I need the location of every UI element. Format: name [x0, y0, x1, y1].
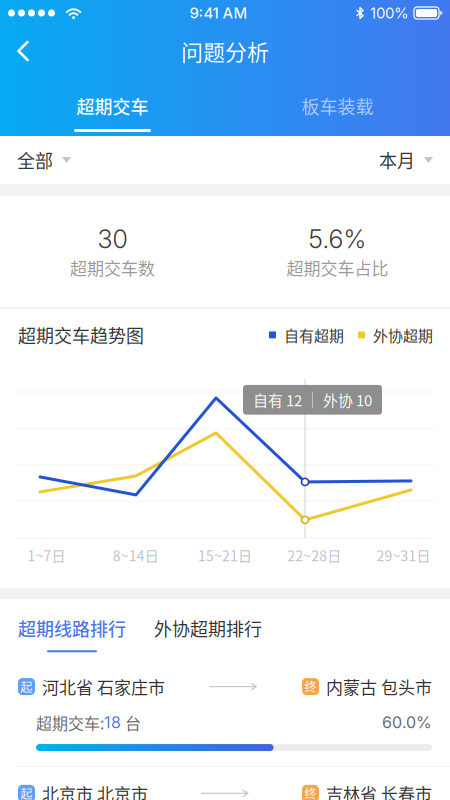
- staticText: 超期交车数: [70, 255, 155, 280]
- button[interactable]: 板车装载: [225, 73, 450, 139]
- staticText: 18: [104, 713, 121, 732]
- staticText: 板车装载: [301, 93, 373, 119]
- staticText: 内蒙古 包头市: [326, 674, 432, 699]
- staticText: 100%: [370, 4, 409, 22]
- staticText: 自有超期: [284, 324, 344, 346]
- button[interactable]: 本月: [362, 132, 450, 188]
- staticText: 吉林省 长春市: [326, 781, 432, 800]
- button[interactable]: 起: [0, 767, 450, 800]
- staticText: 30: [97, 224, 127, 254]
- staticText: 60.0%: [382, 713, 432, 732]
- staticText: 超期交车占比: [286, 255, 388, 280]
- button[interactable]: 超期交车: [0, 73, 225, 139]
- staticText: 自有 12: [253, 389, 302, 411]
- staticText: 1~7日: [28, 545, 66, 565]
- button[interactable]: 起: [0, 660, 450, 766]
- staticText: 河北省 石家庄市: [42, 674, 165, 699]
- staticText: 问题分析: [181, 35, 269, 67]
- staticText: 起: [20, 678, 32, 695]
- staticText: 15~21日: [198, 545, 252, 565]
- staticText: 29~31日: [376, 545, 430, 565]
- staticText: 8~14日: [113, 545, 159, 565]
- staticText: 本月: [379, 147, 415, 173]
- staticText: 超期交车趋势图: [18, 322, 144, 348]
- staticText: 外协超期排行: [154, 615, 262, 641]
- staticText: 超期交车: [76, 93, 148, 119]
- staticText: 22~28日: [287, 545, 341, 565]
- staticText: 外协 10: [323, 389, 372, 411]
- button[interactable]: 超期线路排行: [0, 599, 144, 660]
- staticText: 超期交车:: [36, 711, 104, 734]
- staticText: 9:41 AM: [189, 4, 247, 22]
- staticText: 超期线路排行: [18, 615, 126, 641]
- staticText: 全部: [17, 147, 53, 173]
- staticText: 外协超期: [373, 324, 433, 346]
- staticText: 5.6%: [308, 224, 366, 254]
- staticText: 台: [121, 711, 141, 734]
- staticText: 起: [20, 785, 32, 800]
- staticText: 北京市 北京市: [42, 781, 148, 800]
- button[interactable]: 外协超期排行: [144, 599, 280, 660]
- button[interactable]: 返回: [0, 28, 45, 74]
- button[interactable]: 全部: [0, 132, 88, 188]
- staticText: 终: [304, 785, 316, 800]
- staticText: 终: [304, 678, 316, 695]
